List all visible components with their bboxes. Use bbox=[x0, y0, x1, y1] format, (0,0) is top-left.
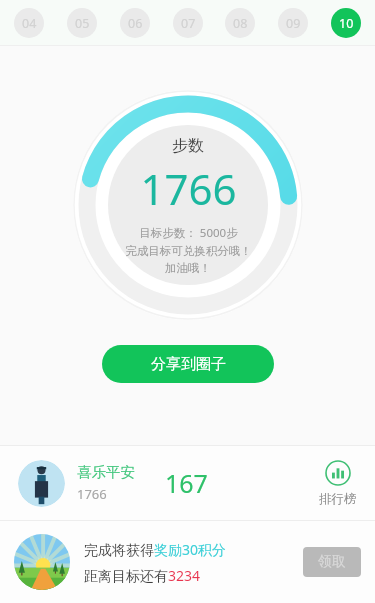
button[interactable]: 排行榜 bbox=[319, 460, 357, 507]
other: 排行榜 bbox=[325, 460, 351, 486]
staticText: 1766 bbox=[77, 485, 107, 503]
staticText: 喜乐平安 bbox=[77, 463, 135, 481]
button[interactable]: 领取 bbox=[303, 547, 361, 577]
button[interactable]: 09 bbox=[278, 8, 308, 38]
staticText: 完成目标可兑换积分哦！ bbox=[125, 244, 252, 258]
staticText: 目标步数： 5000步 bbox=[139, 225, 238, 241]
staticText: 完成将获得奖励30积分 bbox=[84, 540, 227, 559]
staticText: 08 bbox=[233, 15, 248, 32]
button[interactable]: 08 bbox=[225, 8, 255, 38]
button[interactable]: 04 bbox=[14, 8, 44, 38]
staticText: 04 bbox=[22, 15, 37, 32]
staticText: 167 bbox=[165, 466, 208, 500]
staticText: 步数 bbox=[172, 136, 204, 156]
staticText: 05 bbox=[75, 15, 90, 32]
staticText: 06 bbox=[128, 15, 143, 32]
staticText: 领取 bbox=[318, 553, 346, 571]
button[interactable]: 分享到圈子 bbox=[102, 345, 274, 383]
button[interactable]: 10 bbox=[331, 8, 361, 38]
button[interactable]: 07 bbox=[173, 8, 203, 38]
button[interactable]: 完成将获得奖励30积分 bbox=[0, 521, 375, 603]
button[interactable]: 喜乐平安 bbox=[0, 446, 375, 520]
staticText: 距离目标还有3234 bbox=[84, 566, 201, 585]
staticText: 排行榜 bbox=[319, 491, 357, 507]
staticText: 加油哦！ bbox=[165, 261, 211, 275]
staticText: 1766 bbox=[140, 160, 237, 217]
staticText: 09 bbox=[286, 15, 301, 32]
staticText: 分享到圈子 bbox=[151, 355, 226, 374]
staticText: 07 bbox=[181, 15, 196, 32]
button[interactable]: 06 bbox=[120, 8, 150, 38]
button[interactable]: 05 bbox=[67, 8, 97, 38]
staticText: 10 bbox=[339, 15, 354, 32]
